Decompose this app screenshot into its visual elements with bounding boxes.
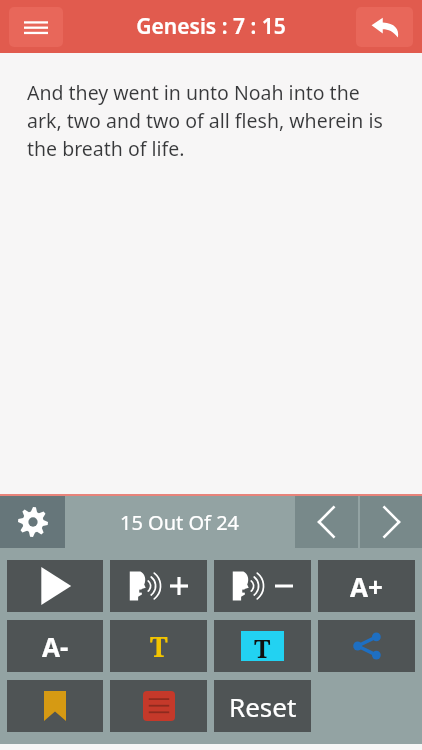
button[interactable]: Share bbox=[318, 620, 415, 672]
staticText: And they went in unto Noah into the ark,… bbox=[27, 79, 390, 162]
button[interactable]: Text colour bbox=[110, 620, 207, 672]
button[interactable]: Back bbox=[356, 7, 413, 47]
button[interactable]: Notes bbox=[110, 680, 207, 732]
button[interactable]: Increase font size bbox=[318, 560, 415, 612]
button[interactable]: Settings bbox=[0, 496, 65, 548]
button[interactable]: Decrease speech rate bbox=[214, 560, 311, 612]
staticText: T bbox=[150, 628, 168, 665]
button[interactable]: Previous bbox=[295, 496, 358, 548]
button[interactable]: Reset bbox=[214, 680, 311, 732]
staticText: 15 Out Of 24 bbox=[120, 509, 240, 536]
staticText: Reset bbox=[229, 689, 297, 724]
button[interactable]: Bookmark bbox=[7, 680, 103, 732]
button[interactable]: Decrease font size bbox=[7, 620, 103, 672]
staticText: Genesis : 7 : 15 bbox=[136, 12, 286, 41]
button[interactable]: Menu bbox=[9, 7, 63, 47]
button[interactable]: Next bbox=[360, 496, 422, 548]
button[interactable]: 15 Out Of 24 bbox=[65, 496, 295, 548]
button[interactable]: Highlight colour bbox=[214, 620, 311, 672]
staticText: A- bbox=[42, 629, 69, 664]
staticText: A+ bbox=[350, 569, 383, 604]
button[interactable]: Increase speech rate bbox=[110, 560, 207, 612]
button[interactable]: Play bbox=[7, 560, 103, 612]
staticText: T bbox=[254, 631, 271, 661]
